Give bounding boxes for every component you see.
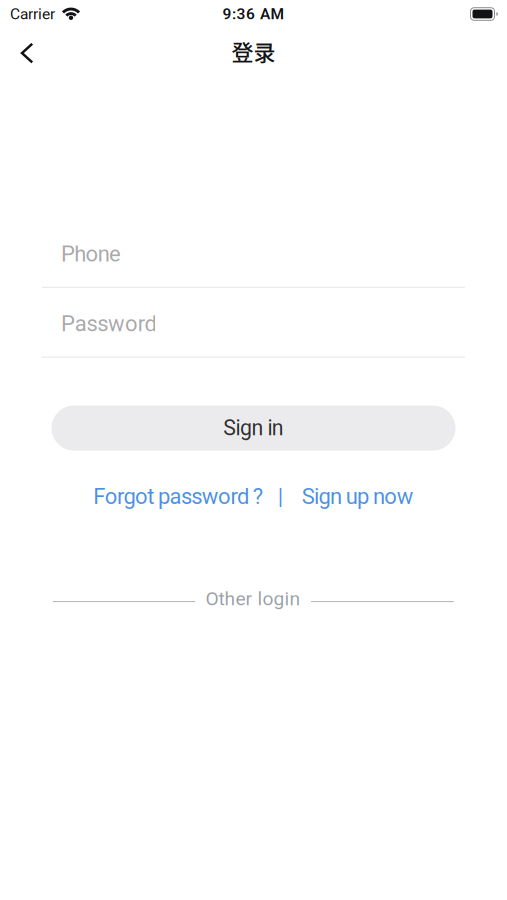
button[interactable]: Sign in xyxy=(51,406,455,451)
button[interactable]: Sign up now xyxy=(302,484,414,509)
staticText: Other login xyxy=(205,587,300,610)
staticText: Sign in xyxy=(223,416,284,441)
staticText: Sign up now xyxy=(302,484,414,509)
staticText: | xyxy=(278,484,283,509)
staticText: Password xyxy=(61,311,156,337)
staticText: Forgot password ? xyxy=(93,484,263,509)
staticText: 9:36 AM xyxy=(222,5,284,23)
button[interactable]: Password xyxy=(42,311,465,358)
staticText: Phone xyxy=(61,241,121,267)
staticText: 登录 xyxy=(231,35,275,67)
button[interactable]: Forgot password ? xyxy=(93,484,263,509)
button[interactable]: Back xyxy=(0,32,50,69)
button[interactable]: Phone xyxy=(42,241,465,288)
staticText: Carrier xyxy=(10,5,55,23)
